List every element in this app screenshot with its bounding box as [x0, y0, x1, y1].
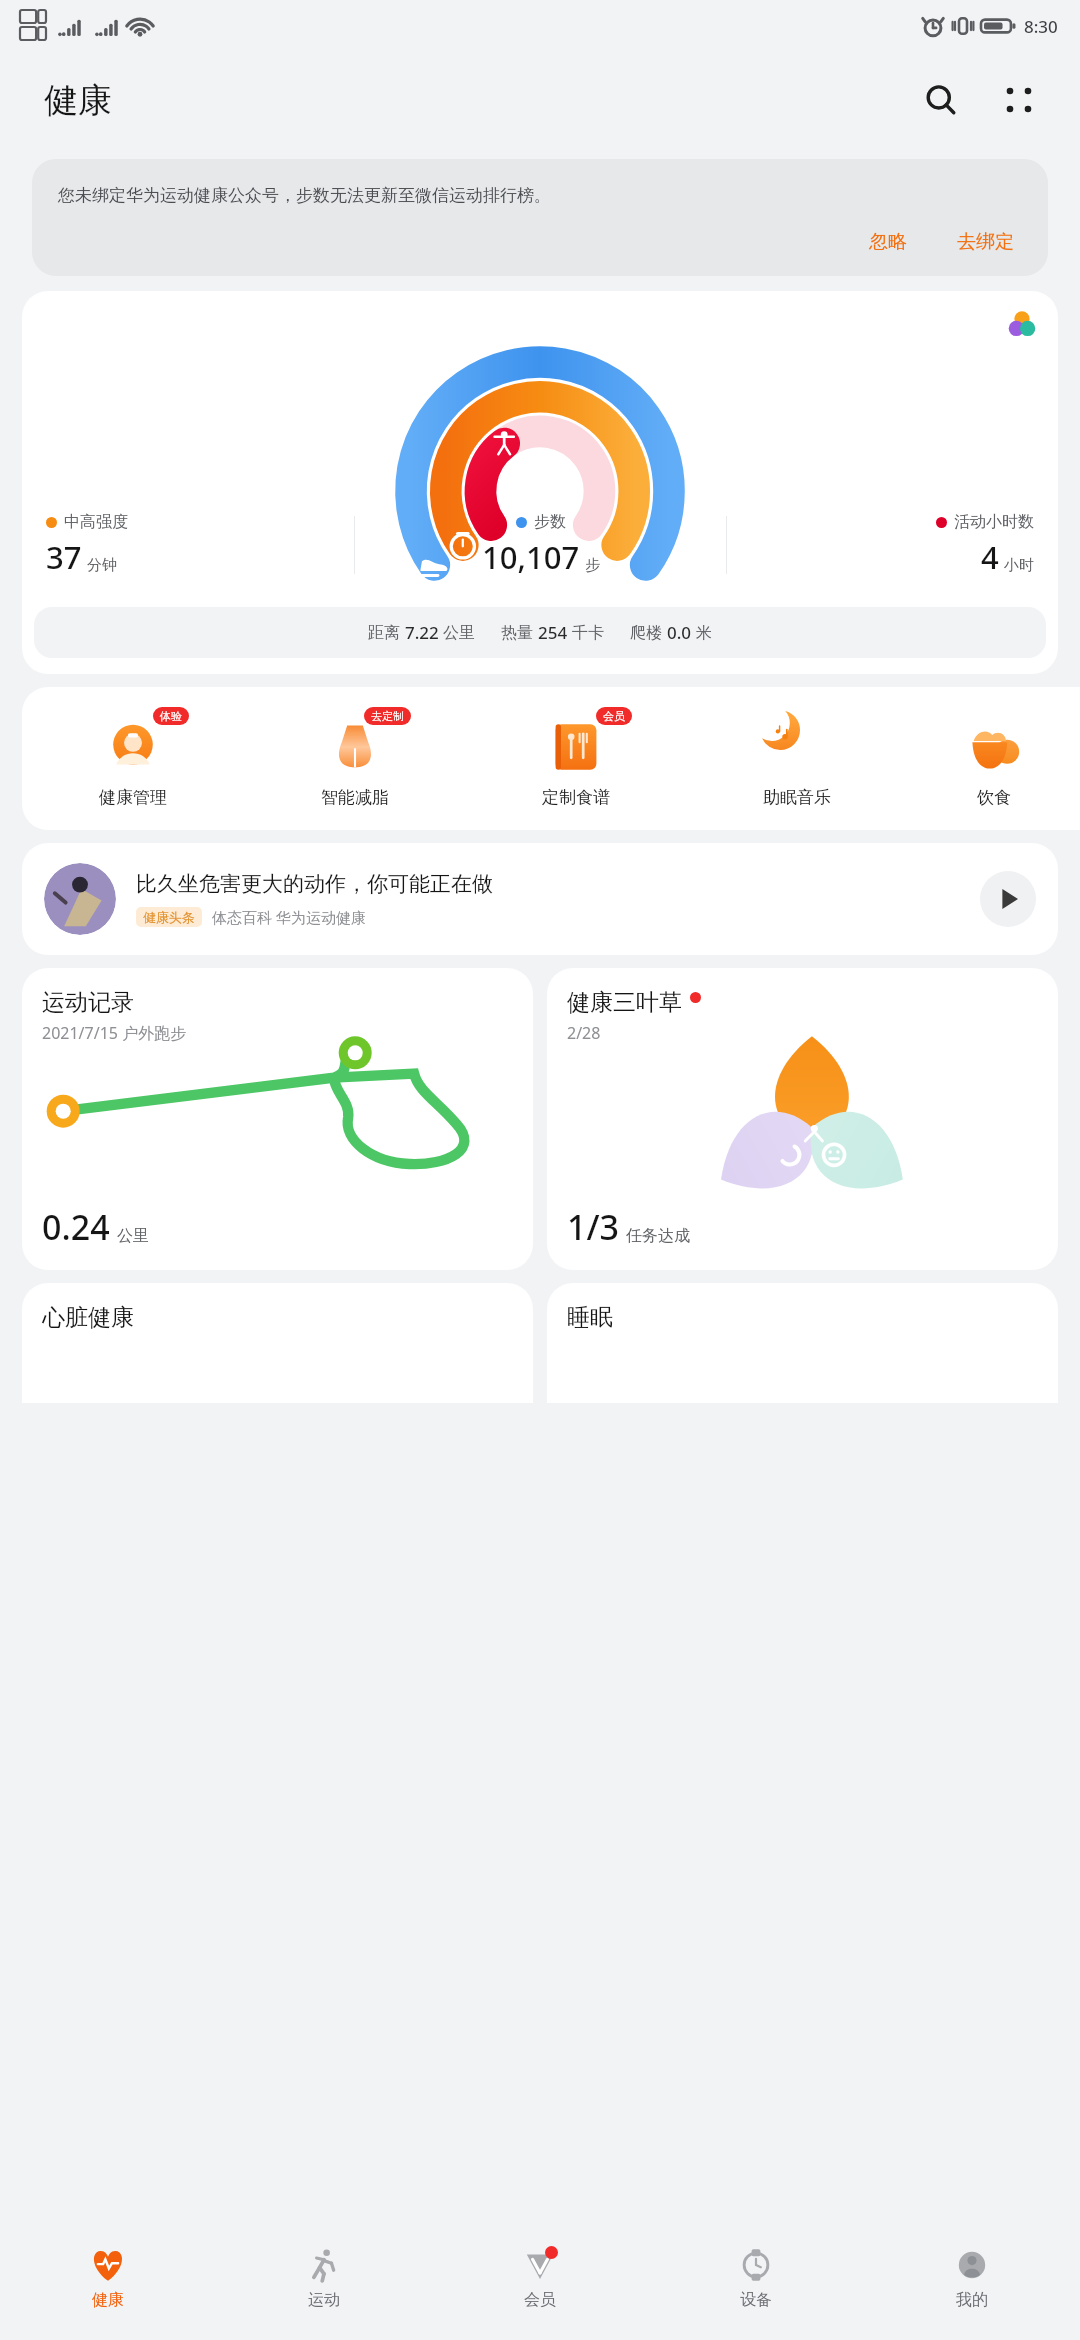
button[interactable]: 我的 — [864, 2212, 1080, 2340]
staticText: 健康三叶草 — [567, 988, 682, 1017]
staticText: 0.24 — [42, 1204, 110, 1250]
button[interactable]: 会员 — [465, 705, 686, 812]
staticText: 分钟 — [87, 556, 117, 575]
button[interactable]: 去绑定 — [949, 226, 1022, 258]
staticText: 健康头条 — [143, 909, 195, 925]
button[interactable]: 忽略 — [861, 226, 915, 258]
staticText: 活动小时数 — [954, 512, 1034, 532]
button[interactable]: 运动 — [216, 2212, 432, 2340]
staticText: 体验 — [160, 709, 182, 723]
staticText: 千卡 — [572, 623, 604, 643]
button[interactable]: 设备 — [648, 2212, 864, 2340]
button[interactable]: More options — [990, 71, 1048, 129]
staticText: 去定制 — [371, 709, 404, 723]
staticText: 我的 — [956, 2290, 988, 2310]
button[interactable]: 去定制 — [244, 705, 465, 812]
staticText: 设备 — [740, 2290, 772, 2310]
staticText: 公里 — [117, 1226, 149, 1246]
staticText: 会员 — [603, 709, 625, 723]
staticText: 您未绑定华为运动健康公众号，步数无法更新至微信运动排行榜。 — [58, 185, 551, 206]
staticText: 比久坐危害更大的动作，你可能正在做 — [136, 871, 493, 897]
staticText: 睡眠 — [567, 1303, 613, 1332]
button[interactable]: 步数 — [355, 497, 726, 593]
staticText: 饮食 — [977, 787, 1011, 808]
staticText: 助眠音乐 — [763, 787, 831, 808]
staticText: 8:30 — [1024, 15, 1058, 38]
staticText: 心脏健康 — [42, 1303, 134, 1332]
button[interactable]: 您未绑定华为运动健康公众号，步数无法更新至微信运动排行榜。 — [32, 159, 1048, 276]
staticText: 运动记录 — [42, 988, 134, 1017]
button[interactable]: Play — [980, 871, 1036, 927]
button[interactable]: 会员 — [432, 2212, 648, 2340]
staticText: 中高强度 — [64, 512, 128, 532]
staticText: 去绑定 — [957, 230, 1014, 254]
staticText: 运动 — [308, 2290, 340, 2310]
staticText: 热量 — [501, 623, 533, 643]
button[interactable]: 饮食 — [907, 705, 1080, 812]
button[interactable]: Health services — [990, 299, 1054, 349]
button[interactable]: 体验 — [22, 705, 244, 812]
staticText: 忽略 — [869, 230, 907, 254]
staticText: 步 — [585, 556, 600, 575]
staticText: 公里 — [443, 623, 475, 643]
button[interactable]: 运动记录 — [22, 968, 533, 1270]
button[interactable]: 健康 — [0, 2212, 216, 2340]
button[interactable]: 睡眠 — [547, 1283, 1058, 1403]
button[interactable]: 健康三叶草 — [547, 968, 1058, 1270]
staticText: 体态百科 华为运动健康 — [212, 907, 366, 927]
button[interactable]: 助眠音乐 — [686, 705, 907, 812]
staticText: 健康 — [44, 79, 112, 122]
staticText: 7.22 — [405, 621, 439, 644]
staticText: 254 — [538, 621, 568, 644]
staticText: 2021/7/15 户外跑步 — [42, 1022, 187, 1044]
staticText: 任务达成 — [626, 1226, 690, 1246]
staticText: 定制食谱 — [542, 787, 610, 808]
button[interactable]: 心脏健康 — [22, 1283, 533, 1403]
staticText: 步数 — [534, 512, 566, 532]
button[interactable]: 比久坐危害更大的动作，你可能正在做 — [22, 843, 1058, 955]
staticText: 1/3 — [567, 1204, 619, 1250]
staticText: 爬楼 — [630, 623, 662, 643]
staticText: 10,107 — [482, 536, 580, 578]
staticText: 37 — [46, 536, 82, 578]
staticText: 小时 — [1004, 556, 1034, 575]
button[interactable]: 距离 — [34, 607, 1046, 658]
button[interactable]: Search — [912, 71, 970, 129]
button[interactable]: 活动小时数 — [727, 497, 1058, 593]
staticText: 距离 — [368, 623, 400, 643]
staticText: 健康管理 — [99, 787, 167, 808]
button[interactable]: 中高强度 — [22, 291, 1058, 674]
staticText: 米 — [696, 623, 712, 643]
button[interactable]: 中高强度 — [22, 497, 354, 593]
staticText: 智能减脂 — [321, 787, 389, 808]
staticText: 4 — [981, 536, 999, 578]
staticText: 2/28 — [567, 1022, 601, 1044]
staticText: 0.0 — [667, 621, 692, 644]
staticText: 会员 — [524, 2290, 556, 2310]
staticText: 健康 — [92, 2290, 124, 2310]
